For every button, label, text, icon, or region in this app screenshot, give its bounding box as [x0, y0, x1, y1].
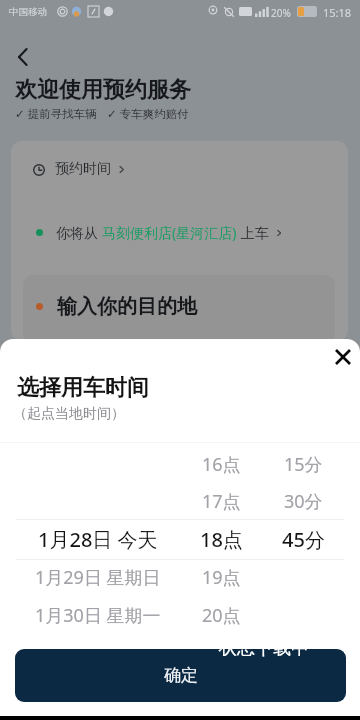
staticText: 15:18 — [323, 5, 352, 20]
staticText: 1月28日 今天 — [38, 526, 158, 553]
staticText: （起点当地时间） — [13, 405, 125, 423]
staticText: 16点 — [202, 452, 241, 477]
staticText: 20点 — [202, 603, 241, 628]
staticText: 马刻便利店(星河汇店) — [102, 223, 237, 242]
staticText: 状态下载中 — [219, 637, 309, 660]
staticText: 30分 — [284, 489, 323, 514]
staticText: ✓ 提前寻找车辆 — [15, 106, 97, 122]
staticText: 选择用车时间 — [17, 374, 149, 402]
button[interactable]: 1月28日 今天 — [0, 523, 360, 555]
button[interactable]: 输入你的目的地 — [23, 275, 335, 341]
staticText: 15分 — [284, 452, 323, 477]
staticText: 欢迎使用预约服务 — [15, 76, 191, 104]
button[interactable]: Back — [4, 38, 42, 76]
button[interactable]: 确定 — [15, 649, 346, 702]
staticText: 18点 — [200, 526, 243, 553]
button[interactable]: 1月30日 星期一 — [0, 599, 360, 631]
button[interactable]: 16点 — [0, 448, 360, 480]
staticText: 上车 — [237, 223, 269, 242]
staticText: ✓ 专车爽约赔付 — [107, 106, 189, 122]
staticText: 1月30日 星期一 — [35, 603, 161, 628]
staticText: 19点 — [202, 565, 241, 590]
staticText: 20% — [271, 6, 291, 20]
staticText: 输入你的目的地 — [57, 294, 197, 319]
staticText: 你将从 — [56, 223, 102, 242]
staticText: 中国移动 — [9, 6, 47, 18]
staticText: 17点 — [202, 489, 241, 514]
staticText: 预约时间 — [55, 160, 111, 178]
button[interactable]: 你将从 — [22, 217, 302, 247]
button[interactable]: 17点 — [0, 485, 360, 517]
button[interactable]: 预约时间 — [22, 153, 132, 183]
button[interactable]: 1月29日 星期日 — [0, 561, 360, 593]
staticText: 确定 — [164, 665, 198, 686]
staticText: 45分 — [282, 526, 325, 553]
staticText: 1月29日 星期日 — [35, 565, 161, 590]
button[interactable]: Close — [329, 343, 357, 371]
